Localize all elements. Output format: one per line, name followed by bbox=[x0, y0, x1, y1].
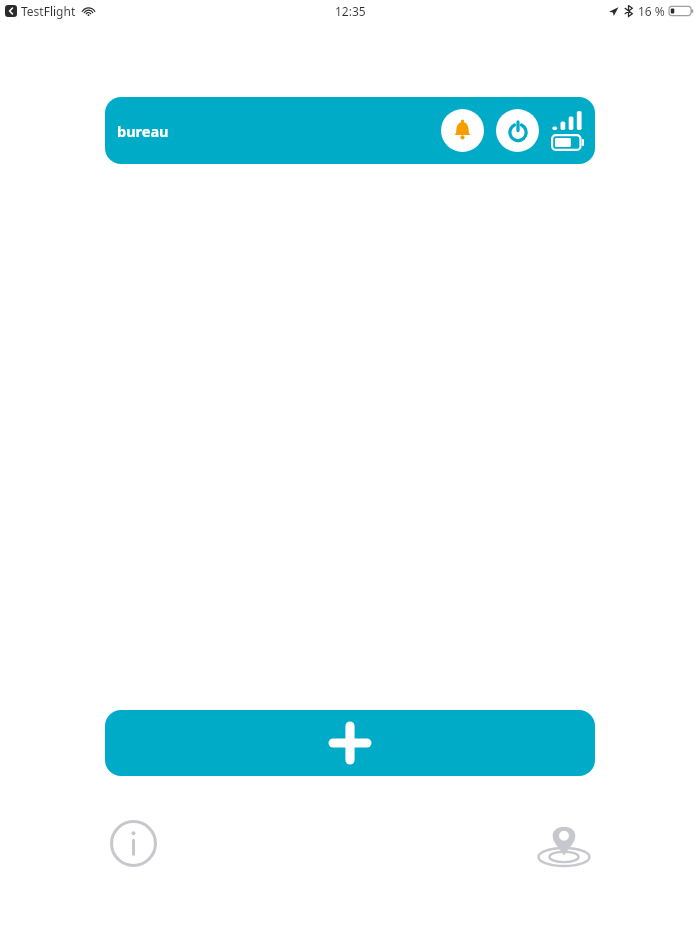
staticText: 16 % bbox=[638, 3, 665, 19]
staticText: TestFlight bbox=[21, 3, 76, 19]
button[interactable]: Power bbox=[496, 109, 539, 152]
button[interactable]: Add bbox=[105, 710, 595, 776]
staticText: 12:35 bbox=[335, 3, 366, 19]
other: Signal and battery bbox=[551, 110, 585, 151]
button[interactable]: Location bbox=[533, 812, 595, 874]
button[interactable]: Alarm bbox=[441, 109, 484, 152]
button[interactable]: bureau bbox=[105, 97, 595, 164]
staticText: bureau bbox=[117, 121, 169, 141]
button[interactable]: Information bbox=[105, 815, 161, 871]
